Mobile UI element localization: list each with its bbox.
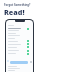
staticText: Read! bbox=[4, 7, 25, 17]
staticText: Forgot Something? bbox=[4, 3, 31, 7]
button[interactable] bbox=[10, 61, 28, 64]
